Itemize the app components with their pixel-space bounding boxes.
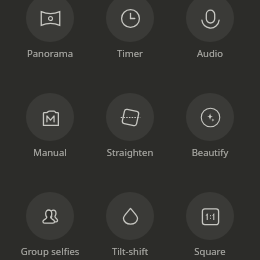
button[interactable]: Tilt-shift: [90, 192, 170, 258]
staticText: Panorama: [10, 47, 90, 60]
button[interactable]: Audio: [170, 0, 250, 60]
button[interactable]: Straighten: [90, 93, 170, 159]
staticText: Square: [170, 245, 250, 258]
staticText: Beautify: [170, 146, 250, 159]
button[interactable]: Timer: [90, 0, 170, 60]
button[interactable]: Manual: [10, 93, 90, 159]
button[interactable]: Square: [170, 192, 250, 258]
button[interactable]: Beautify: [170, 93, 250, 159]
staticText: Tilt-shift: [90, 245, 170, 258]
staticText: Straighten: [90, 146, 170, 159]
staticText: Group selfies: [10, 245, 90, 258]
button[interactable]: Panorama: [10, 0, 90, 60]
staticText: Timer: [90, 47, 170, 60]
staticText: Audio: [170, 47, 250, 60]
staticText: Manual: [10, 146, 90, 159]
button[interactable]: Group selfies: [10, 192, 90, 258]
